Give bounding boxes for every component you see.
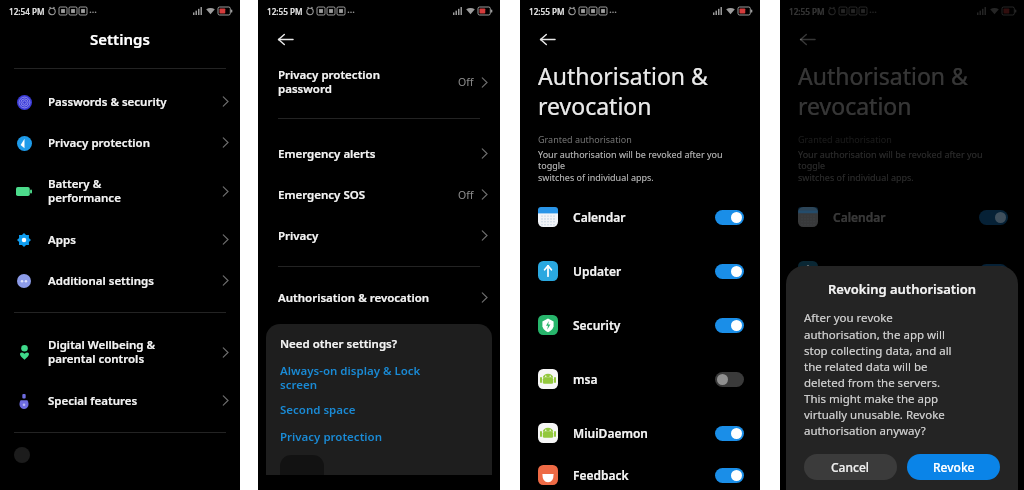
- staticText: Privacy protection: [280, 429, 382, 445]
- staticText: 12:55 PM: [789, 6, 825, 17]
- staticText: Privacy protection: [48, 135, 150, 151]
- button[interactable]: msa: [780, 352, 1024, 406]
- staticText: MiuiDaemon: [833, 425, 909, 441]
- button[interactable]: Calendar: [780, 190, 1024, 244]
- staticText: Authorisation & revocation: [798, 60, 968, 121]
- button[interactable]: Feedback: [520, 460, 760, 490]
- button[interactable]: Second space: [280, 402, 356, 418]
- button[interactable]: Back: [268, 22, 302, 56]
- button[interactable]: Digital Wellbeing & parental controls: [0, 324, 240, 380]
- button[interactable]: Updater: [520, 244, 760, 298]
- button[interactable]: Cancel: [804, 454, 897, 480]
- staticText: Digital Wellbeing & parental controls: [48, 337, 155, 367]
- staticText: Special features: [48, 393, 138, 409]
- button[interactable]: Security: [780, 298, 1024, 352]
- staticText: Security: [573, 317, 621, 333]
- staticText: Off: [458, 188, 474, 202]
- button[interactable]: Back: [790, 22, 824, 56]
- staticText: Authorisation & revocation: [278, 290, 430, 306]
- button[interactable]: Privacy protection: [0, 122, 240, 163]
- staticText: 12:55 PM: [529, 6, 565, 17]
- staticText: Off: [458, 75, 474, 89]
- staticText: Calendar: [833, 209, 886, 225]
- button[interactable]: Authorisation & revocation: [258, 277, 500, 318]
- button[interactable]: Updater: [780, 244, 1024, 298]
- button[interactable]: On: [715, 318, 744, 333]
- staticText: Apps: [48, 232, 76, 248]
- button[interactable]: MiuiDaemon: [520, 406, 760, 460]
- staticText: msa: [573, 371, 598, 387]
- button[interactable]: Passwords & security: [0, 81, 240, 122]
- staticText: Calendar: [573, 209, 626, 225]
- button[interactable]: Revoke: [907, 454, 1000, 480]
- staticText: Cancel: [831, 459, 870, 475]
- staticText: Your authorisation will be revoked after…: [538, 148, 746, 184]
- staticText: MiuiDaemon: [573, 425, 649, 441]
- button[interactable]: Privacy: [258, 215, 500, 256]
- staticText: Feedback: [833, 467, 889, 483]
- button[interactable]: Back: [530, 22, 564, 56]
- button[interactable]: Apps: [0, 219, 240, 260]
- staticText: Revoking authorisation: [828, 280, 977, 298]
- staticText: Updater: [833, 263, 882, 279]
- button[interactable]: Privacy protection password: [258, 60, 500, 104]
- staticText: Authorisation & revocation: [538, 60, 708, 121]
- button[interactable]: On: [715, 210, 744, 225]
- staticText: Privacy: [278, 228, 319, 244]
- staticText: Passwords & security: [48, 94, 167, 110]
- button[interactable]: Privacy protection: [280, 429, 382, 445]
- staticText: msa: [833, 371, 858, 387]
- staticText: Updater: [573, 263, 622, 279]
- button[interactable]: Always-on display & Lock screen: [280, 363, 421, 393]
- staticText: Your authorisation will be revoked after…: [798, 148, 1010, 184]
- button[interactable]: On: [979, 468, 1008, 483]
- staticText: Second space: [280, 402, 356, 418]
- staticText: Feedback: [573, 467, 629, 483]
- button[interactable]: Additional settings: [0, 260, 240, 301]
- button[interactable]: Emergency alerts: [258, 133, 500, 174]
- button[interactable]: msa: [520, 352, 760, 406]
- staticText: Emergency SOS: [278, 187, 366, 203]
- button[interactable]: MiuiDaemon: [780, 406, 1024, 460]
- button[interactable]: On: [715, 426, 744, 441]
- staticText: Revoke: [933, 459, 975, 475]
- staticText: Security: [833, 317, 881, 333]
- staticText: Emergency alerts: [278, 146, 376, 162]
- staticText: Additional settings: [48, 273, 154, 289]
- staticText: Always-on display & Lock screen: [280, 363, 421, 393]
- button[interactable]: Special features: [0, 380, 240, 421]
- button[interactable]: Security: [520, 298, 760, 352]
- staticText: Battery & performance: [48, 176, 121, 206]
- button[interactable]: On: [979, 264, 1008, 279]
- staticText: Granted authorisation: [798, 133, 892, 145]
- staticText: Granted authorisation: [538, 133, 632, 145]
- button[interactable]: Off: [715, 372, 744, 387]
- staticText: 12:54 PM: [9, 6, 45, 17]
- staticText: Privacy protection password: [278, 67, 380, 97]
- staticText: Need other settings?: [280, 336, 398, 352]
- staticText: Settings: [90, 29, 150, 49]
- staticText: After you revoke authorisation, the app …: [804, 310, 952, 438]
- button[interactable]: Battery & performance: [0, 163, 240, 219]
- button[interactable]: On: [979, 210, 1008, 225]
- button[interactable]: Feedback: [780, 460, 1024, 490]
- button[interactable]: On: [715, 264, 744, 279]
- staticText: 12:55 PM: [267, 6, 303, 17]
- button[interactable]: Emergency SOS: [258, 174, 500, 215]
- button[interactable]: Calendar: [520, 190, 760, 244]
- button[interactable]: On: [715, 468, 744, 483]
